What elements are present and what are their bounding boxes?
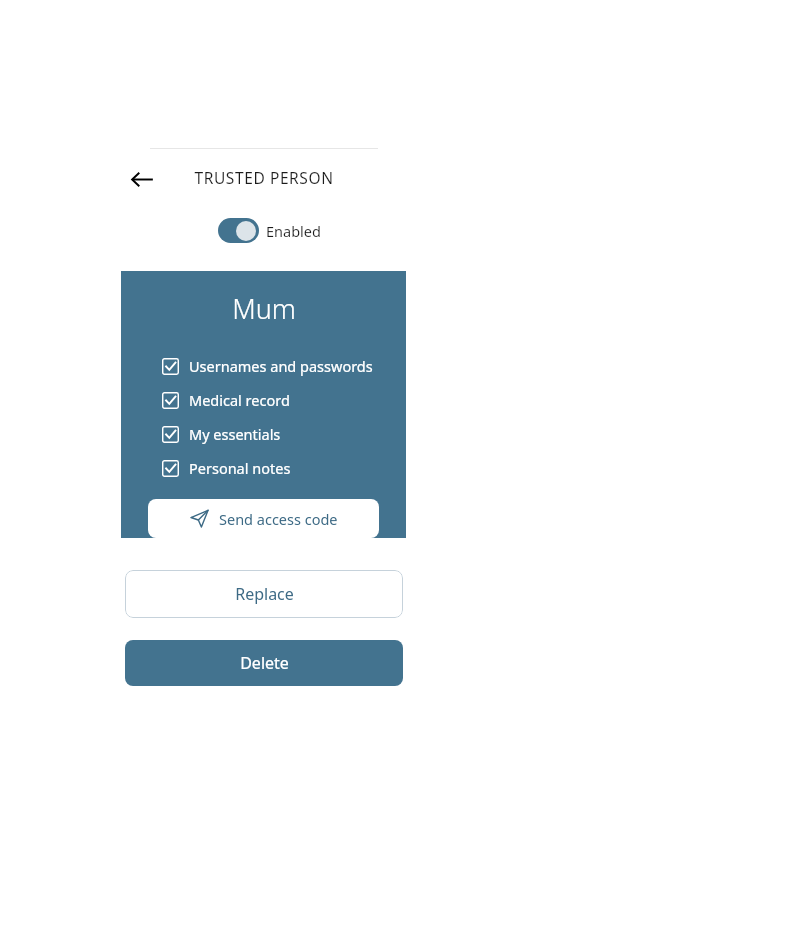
button[interactable]: Usernames and passwords (121, 349, 406, 383)
staticText: Send access code (219, 509, 338, 529)
staticText: Medical record (189, 390, 290, 410)
button[interactable]: My essentials (121, 417, 406, 451)
button[interactable]: Replace (125, 570, 403, 618)
staticText: Personal notes (189, 458, 291, 478)
button[interactable]: Send access code (148, 499, 379, 538)
button[interactable]: Personal notes (121, 451, 406, 485)
staticText: Mum (232, 290, 296, 327)
staticText: My essentials (189, 424, 281, 444)
staticText: Usernames and passwords (189, 356, 373, 376)
staticText: TRUSTED PERSON (194, 167, 334, 188)
button[interactable]: Delete (125, 640, 403, 686)
staticText: Replace (235, 583, 294, 605)
staticText: Enabled (266, 221, 321, 241)
button[interactable]: Medical record (121, 383, 406, 417)
button[interactable]: Back (124, 161, 160, 197)
button[interactable]: Enabled (218, 218, 321, 243)
staticText: Delete (240, 652, 289, 674)
